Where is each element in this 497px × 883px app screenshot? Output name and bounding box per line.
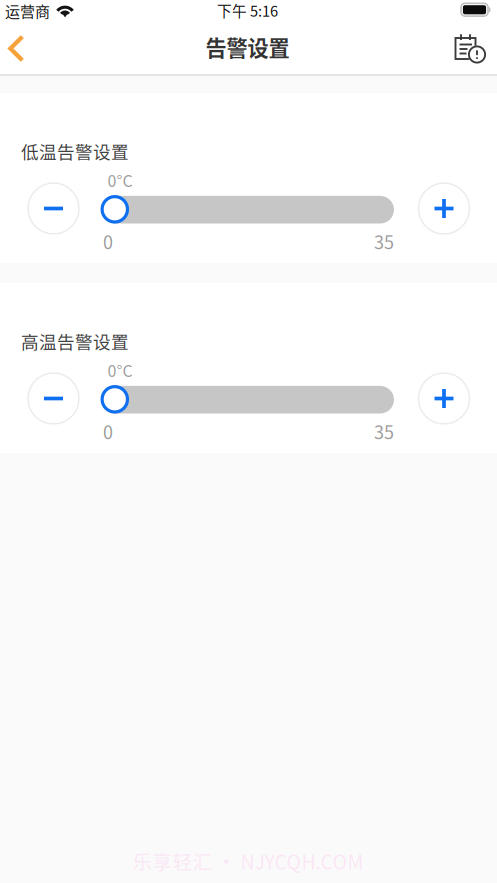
button[interactable]: 告警记录 [445, 23, 495, 74]
staticText: 乐享轻汇 · NJYCQH.COM [132, 847, 363, 875]
staticText: 高温告警设置 [21, 328, 129, 354]
staticText: 0 [103, 418, 113, 445]
staticText: 35 [374, 418, 394, 445]
staticText: 0 [103, 228, 113, 255]
staticText: 0°C [107, 168, 132, 192]
staticText: 0°C [107, 358, 132, 382]
button[interactable]: 增加 [416, 370, 472, 426]
staticText: 运营商 [5, 0, 50, 22]
button[interactable]: 减少 [25, 370, 81, 426]
staticText: 下午 5:16 [217, 0, 278, 21]
staticText: 35 [374, 228, 394, 255]
button[interactable]: 减少 [25, 180, 81, 236]
staticText: 低温告警设置 [21, 138, 129, 164]
button[interactable]: 返回 [0, 23, 38, 74]
staticText: 告警设置 [205, 32, 289, 62]
button[interactable]: 增加 [416, 180, 472, 236]
